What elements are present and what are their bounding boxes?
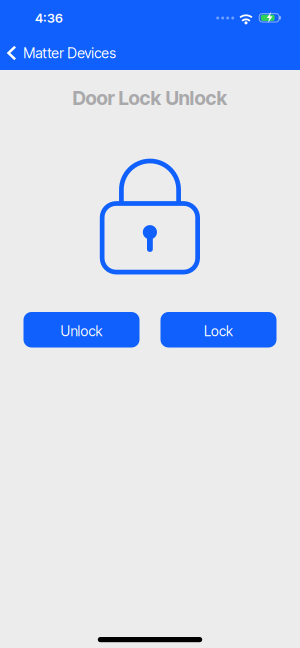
button[interactable]: Unlock: [23, 312, 139, 347]
button[interactable]: Lock: [160, 312, 276, 347]
staticText: 4:36: [35, 10, 63, 26]
staticText: Unlock: [60, 323, 102, 340]
staticText: Lock: [204, 323, 233, 340]
staticText: Door Lock Unlock: [72, 86, 227, 110]
staticText: Matter Devices: [23, 44, 116, 62]
button[interactable]: Matter Devices: [0, 36, 128, 70]
